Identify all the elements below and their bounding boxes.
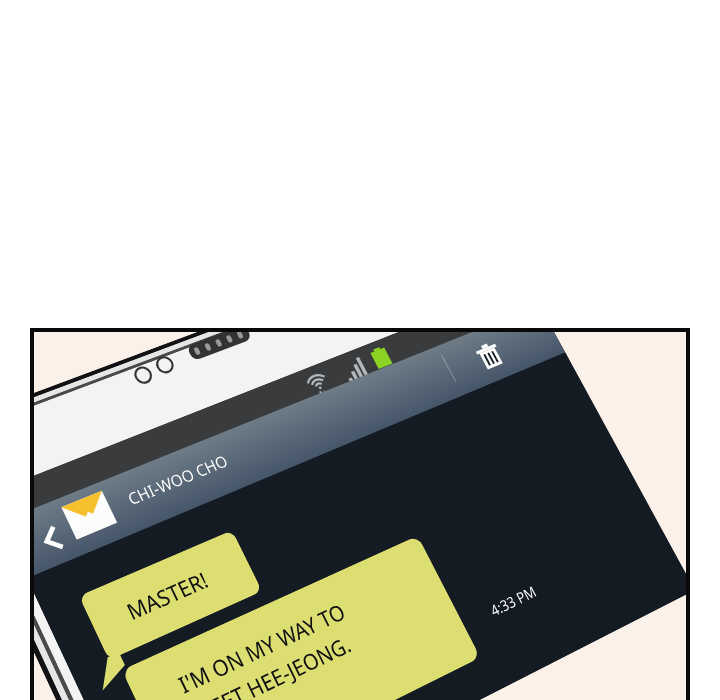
button[interactable]: I'M ON MY WAY TO MEET HEE-JEONG. xyxy=(122,535,481,700)
button[interactable]: Delete xyxy=(462,332,517,381)
staticText: 4:33 PM xyxy=(486,581,540,620)
staticText: MASTER! xyxy=(122,565,214,627)
staticText: CHI-WOO CHO xyxy=(124,450,231,510)
staticText: I'M ON MY WAY TO MEET HEE-JEONG. xyxy=(173,597,365,700)
button[interactable]: MASTER! xyxy=(79,530,262,660)
button[interactable]: Back xyxy=(34,514,76,565)
